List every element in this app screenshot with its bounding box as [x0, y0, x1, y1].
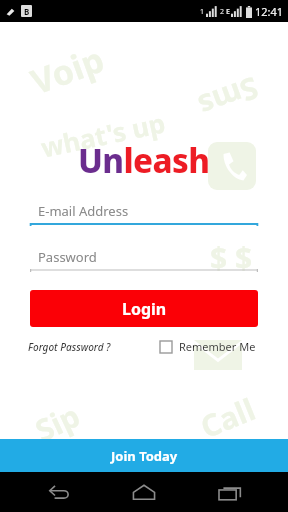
- button[interactable]: Home: [117, 472, 171, 512]
- staticText: Unleash: [78, 138, 210, 183]
- button[interactable]: Remember Me: [160, 336, 256, 357]
- staticText: E: [226, 7, 230, 17]
- staticText: what's up: [38, 104, 168, 165]
- staticText: Login: [122, 298, 167, 320]
- button[interactable]: Recent apps: [203, 472, 257, 512]
- button[interactable]: Forgot Password ?: [28, 337, 111, 357]
- staticText: Remember Me: [179, 339, 256, 354]
- staticText: Join Today: [111, 447, 178, 465]
- button[interactable]: E-mail Address: [30, 202, 258, 226]
- staticText: Password: [38, 248, 97, 266]
- staticText: 2: [220, 7, 225, 17]
- staticText: Sms: [193, 68, 264, 127]
- staticText: $ $: [210, 237, 253, 278]
- staticText: 12:41: [255, 4, 284, 19]
- staticText: Forgot Password ?: [28, 340, 111, 354]
- staticText: Voip: [24, 36, 111, 104]
- staticText: Call: [194, 388, 262, 447]
- button[interactable]: Back: [32, 472, 86, 512]
- button[interactable]: Login: [30, 290, 258, 327]
- button[interactable]: Join Today: [0, 439, 288, 472]
- staticText: 1: [200, 7, 205, 17]
- button[interactable]: Password: [30, 248, 258, 272]
- staticText: E-mail Address: [38, 202, 129, 220]
- staticText: B: [24, 6, 30, 17]
- staticText: Sip: [28, 394, 86, 451]
